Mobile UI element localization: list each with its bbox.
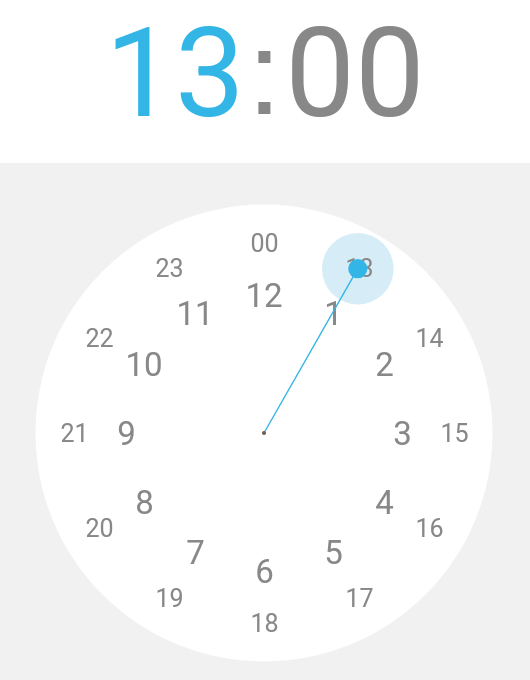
staticText: 21: [60, 419, 89, 448]
button[interactable]: 2: [360, 344, 408, 384]
button[interactable]: 6: [240, 551, 288, 591]
staticText: 17: [345, 584, 374, 613]
button[interactable]: 10: [120, 344, 168, 384]
staticText: 11: [176, 294, 214, 333]
staticText: 1: [324, 294, 343, 333]
button[interactable]: 21: [50, 413, 98, 453]
staticText: 4: [375, 483, 394, 522]
button[interactable]: 14: [405, 318, 453, 358]
staticText: 12: [245, 276, 283, 315]
button[interactable]: 15: [430, 413, 478, 453]
staticText: 2: [375, 345, 394, 384]
button[interactable]: 22: [75, 318, 123, 358]
staticText: 20: [85, 514, 114, 543]
button[interactable]: 5: [309, 532, 357, 572]
staticText: 22: [85, 324, 114, 353]
staticText: 00: [285, 1, 425, 146]
staticText: 13: [105, 1, 245, 146]
staticText: 7: [186, 533, 205, 572]
staticText: 23: [155, 254, 184, 283]
staticText: 5: [324, 533, 343, 572]
button[interactable]: 23: [145, 248, 193, 288]
staticText: 14: [415, 324, 444, 353]
staticText: 8: [135, 483, 154, 522]
button[interactable]: 11: [171, 293, 219, 333]
staticText: 15: [440, 419, 469, 448]
button[interactable]: 17: [335, 578, 383, 618]
button[interactable]: 19: [145, 578, 193, 618]
staticText: 13: [345, 254, 374, 283]
button[interactable]: 3: [378, 413, 426, 453]
staticText: 3: [393, 414, 412, 453]
button[interactable]: 20: [75, 508, 123, 548]
staticText: 19: [155, 584, 184, 613]
button[interactable]: 1: [309, 293, 357, 333]
staticText: 9: [117, 414, 136, 453]
button[interactable]: 13: [335, 248, 383, 288]
button[interactable]: 12: [240, 275, 288, 315]
staticText: 18: [250, 609, 279, 638]
button[interactable]: 7: [171, 532, 219, 572]
button[interactable]: 13: [100, 1, 250, 146]
staticText: 16: [415, 514, 444, 543]
staticText: 00: [250, 229, 279, 258]
button[interactable]: 00: [240, 223, 288, 263]
staticText: 6: [255, 552, 274, 591]
button[interactable]: 9: [102, 413, 150, 453]
button[interactable]: 4: [360, 482, 408, 522]
button[interactable]: 8: [120, 482, 168, 522]
button[interactable]: 16: [405, 508, 453, 548]
button[interactable]: 00: [280, 1, 430, 146]
staticText: 10: [125, 345, 163, 384]
button[interactable]: 18: [240, 603, 288, 643]
